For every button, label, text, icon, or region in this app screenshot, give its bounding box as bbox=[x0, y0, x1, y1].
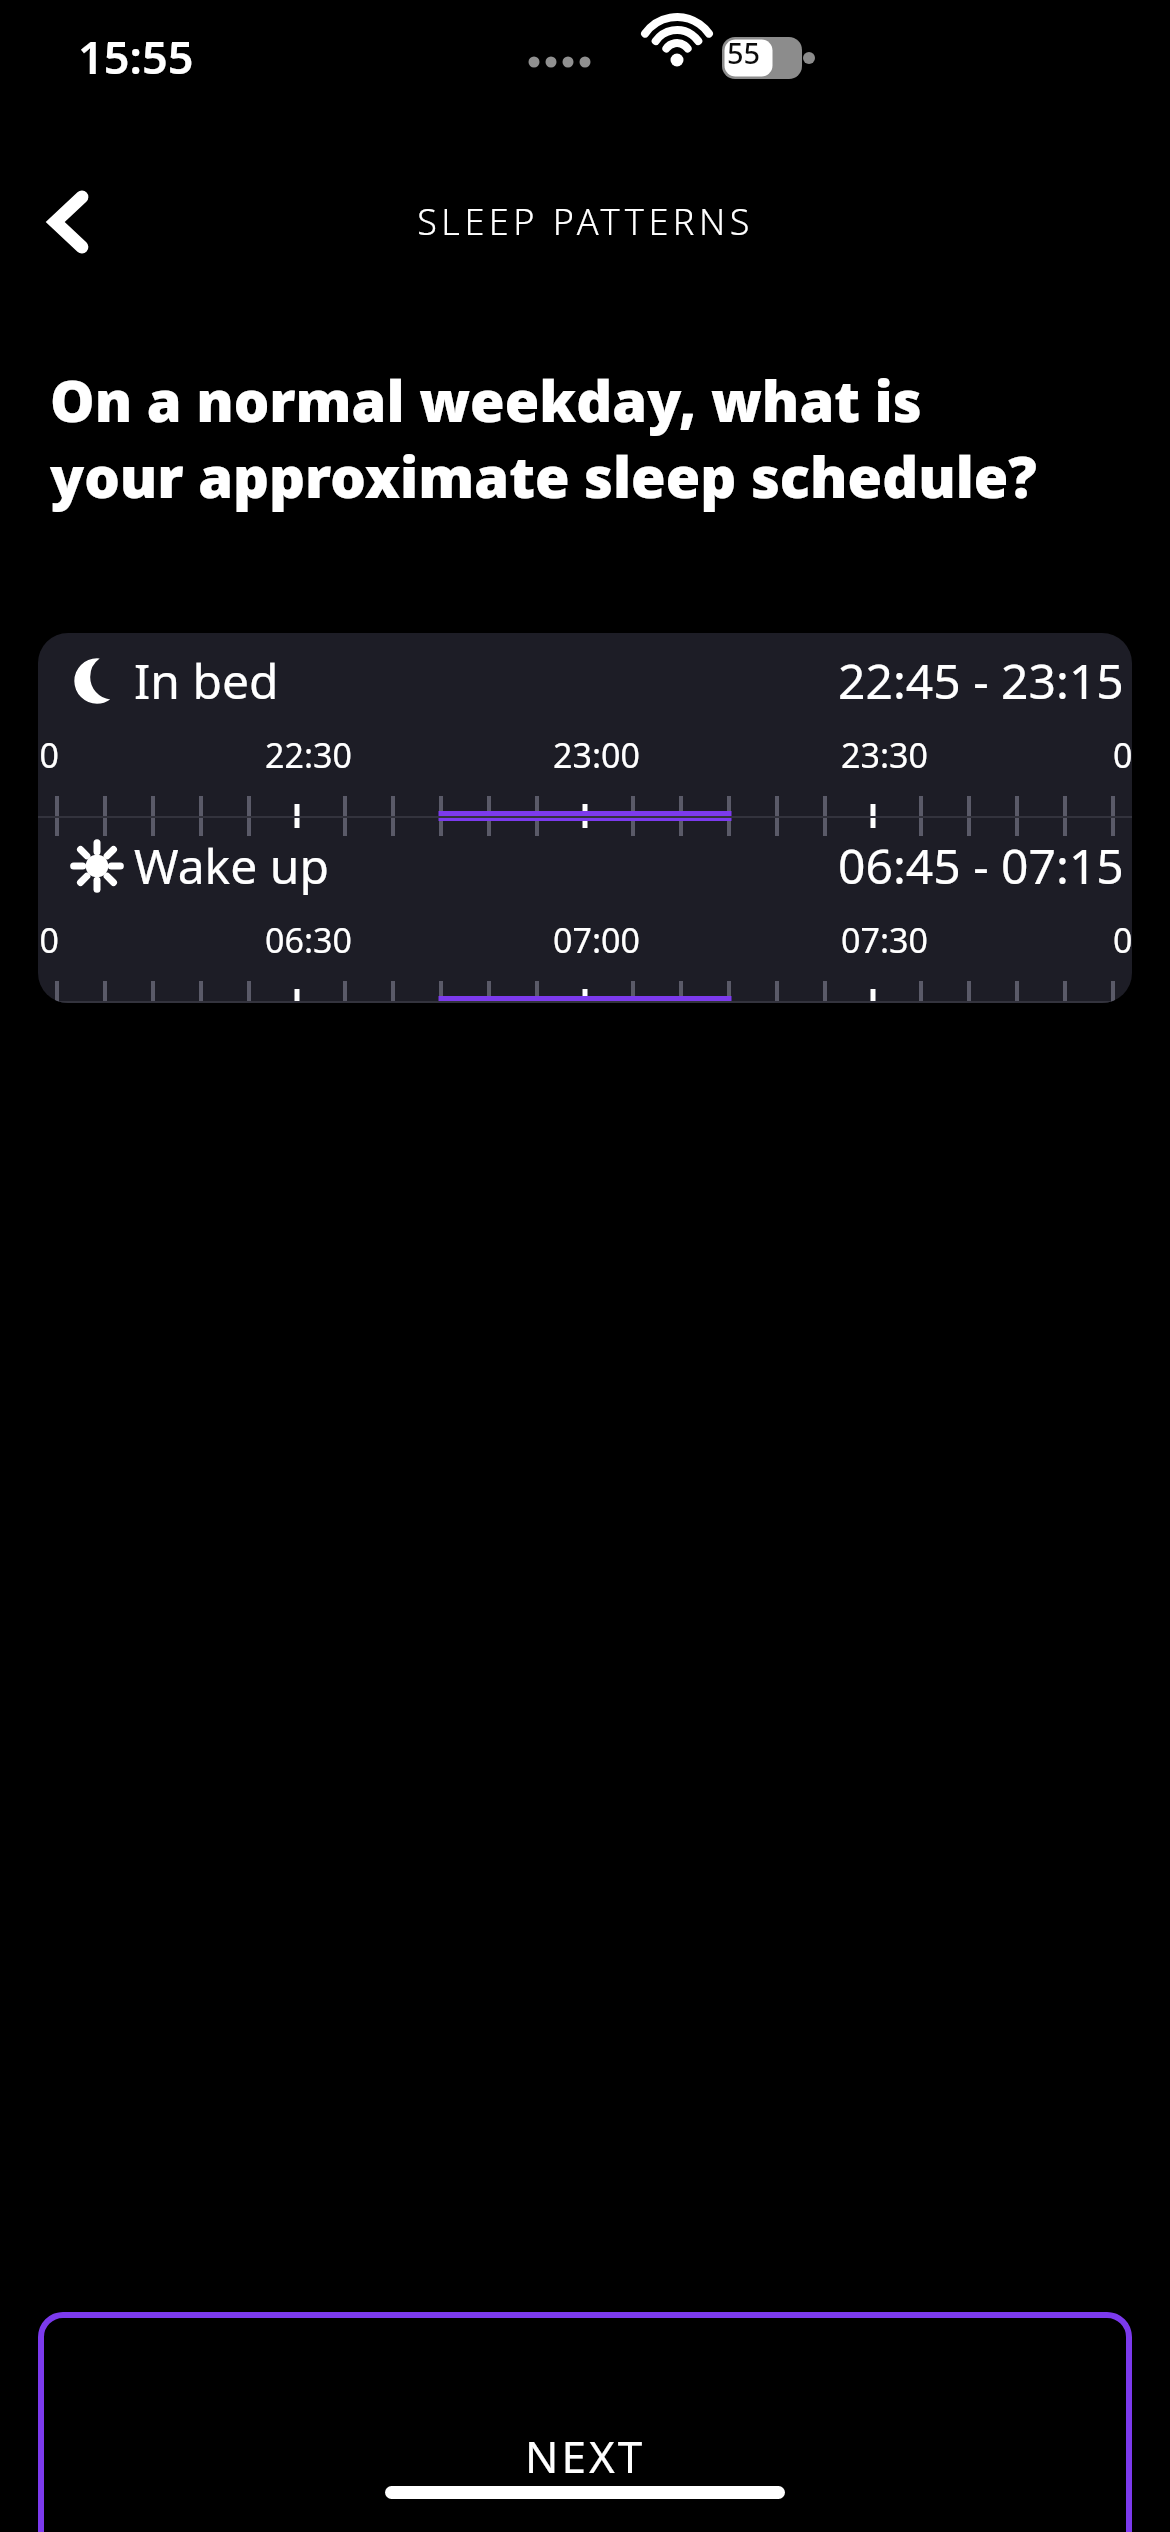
staticText: 06:30 bbox=[265, 917, 352, 963]
button[interactable]: 00 bbox=[38, 913, 1132, 1001]
button[interactable]: Wake up bbox=[38, 818, 1132, 913]
staticText: SLEEP PATTERNS bbox=[417, 197, 754, 246]
staticText: 07:00 bbox=[553, 917, 640, 963]
staticText: 23:30 bbox=[841, 732, 928, 778]
staticText: 15:55 bbox=[78, 26, 194, 87]
staticText: 0 bbox=[1113, 917, 1132, 963]
button[interactable]: In bed bbox=[38, 633, 1132, 728]
staticText: 06:45 - 07:15 bbox=[838, 833, 1124, 898]
staticText: 0 bbox=[1113, 732, 1132, 778]
staticText: 00 bbox=[38, 732, 59, 778]
staticText: 07:30 bbox=[841, 917, 928, 963]
staticText: In bed bbox=[134, 648, 279, 713]
button[interactable]: 00 bbox=[38, 728, 1132, 816]
staticText: 23:00 bbox=[553, 732, 640, 778]
staticText: 22:30 bbox=[265, 732, 352, 778]
button[interactable]: NEXT bbox=[38, 2312, 1132, 2532]
staticText: 00 bbox=[38, 917, 59, 963]
staticText: 55 bbox=[727, 33, 761, 72]
staticText: Wake up bbox=[134, 833, 329, 898]
staticText: On a normal weekday, what is bbox=[50, 362, 922, 438]
staticText: NEXT bbox=[525, 2426, 646, 2486]
button[interactable]: Back bbox=[14, 172, 124, 272]
staticText: 22:45 - 23:15 bbox=[838, 648, 1124, 713]
staticText: your approximate sleep schedule? bbox=[50, 438, 1037, 514]
